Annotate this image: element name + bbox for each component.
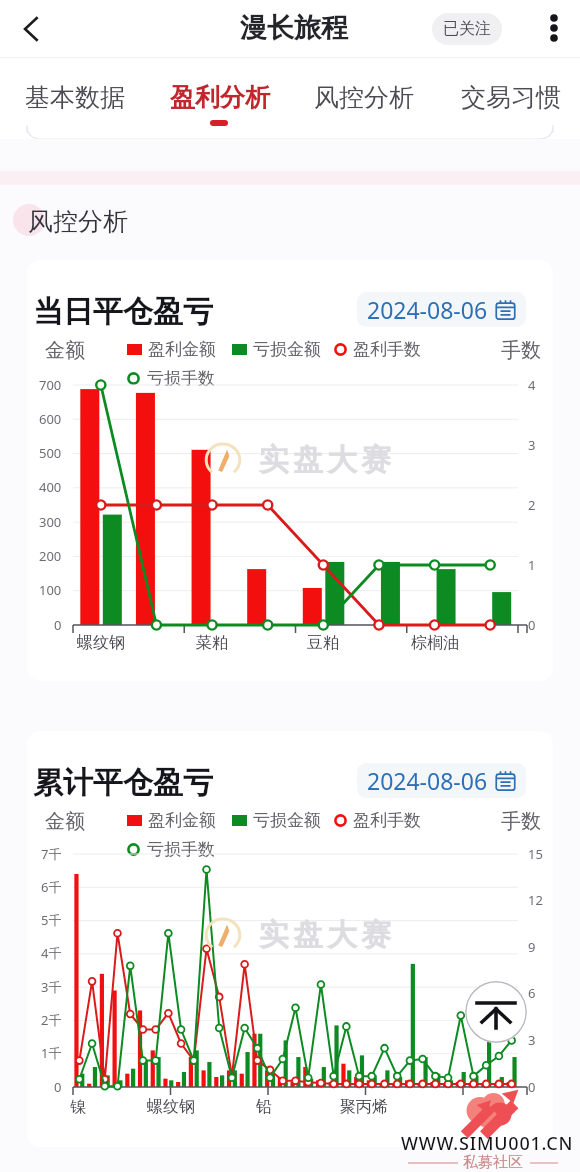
staticText: 7千 [41,845,62,863]
staticText: 0 [528,1078,536,1096]
staticText: 2024-08-06 [367,765,488,796]
staticText: 3 [528,436,536,454]
button[interactable]: 盈利分析 [162,58,278,128]
staticText: 亏损手数 [147,368,215,389]
staticText: 金额 [45,338,85,363]
button[interactable]: 已关注 [432,13,502,45]
staticText: 基本数据 [25,82,125,113]
staticText: 聚丙烯 [340,1097,388,1117]
staticText: 亏损金额 [253,339,321,360]
staticText: 漫长旅程 [240,11,348,45]
staticText: 交易习惯 [461,82,561,113]
staticText: 风控分析 [314,82,414,113]
staticText: 实盘大赛 [257,441,393,479]
staticText: 累计平仓盈亏 [33,764,213,802]
staticText: 4千 [41,944,62,962]
staticText: 5千 [41,911,62,929]
staticText: 亏损手数 [147,839,215,860]
staticText: 200 [39,547,62,565]
staticText: 风控分析 [28,206,128,237]
staticText: 500 [39,444,62,462]
button[interactable]: Back [9,7,53,51]
staticText: 9 [528,938,536,956]
staticText: 菜粕 [196,633,228,653]
staticText: 豆粕 [307,633,339,653]
staticText: 1千 [41,1044,62,1062]
button[interactable]: 2024-08-06 [357,763,526,798]
staticText: 0 [54,616,62,634]
staticText: 2 [528,496,536,514]
staticText: 手数 [501,338,541,363]
button[interactable]: 风控分析 [306,58,422,128]
staticText: 15 [528,845,543,863]
staticText: 4 [528,376,536,394]
staticText: 亏损金额 [253,810,321,831]
staticText: 2千 [41,1011,62,1029]
staticText: 盈利金额 [148,810,216,831]
staticText: 盈利手数 [353,339,421,360]
staticText: 盈利金额 [148,339,216,360]
staticText: 300 [39,513,62,531]
staticText: 当日平仓盈亏 [33,293,213,331]
staticText: 12 [528,891,543,909]
staticText: 0 [54,1078,62,1096]
staticText: 3 [528,1031,536,1049]
staticText: 金额 [45,809,85,834]
staticText: 盈利分析 [170,82,270,113]
staticText: 铅 [256,1097,272,1117]
staticText: 私募社区 [463,1153,523,1172]
staticText: 700 [39,376,62,394]
staticText: 手数 [501,809,541,834]
staticText: 实盘大赛 [257,916,393,954]
staticText: 6 [528,984,536,1002]
staticText: 600 [39,410,62,428]
staticText: 螺纹钢 [77,633,125,653]
staticText: 盈利手数 [353,810,421,831]
button[interactable]: More options [532,6,576,50]
button[interactable]: 基本数据 [17,58,133,128]
staticText: 棕榈油 [411,633,459,653]
staticText: 已关注 [443,19,491,39]
staticText: 1 [528,556,536,574]
button[interactable]: 2024-08-06 [357,292,526,327]
staticText: 3千 [41,978,62,996]
button[interactable]: Scroll to top [465,981,527,1043]
staticText: 镍 [70,1097,86,1117]
staticText: 螺纹钢 [147,1097,195,1117]
staticText: 2024-08-06 [367,294,488,325]
staticText: 6千 [41,878,62,896]
staticText: 100 [39,581,62,599]
staticText: 400 [39,478,62,496]
staticText: WWW.SIMU001.CN [401,1131,574,1156]
button[interactable]: 交易习惯 [453,58,569,128]
staticText: 0 [528,616,536,634]
